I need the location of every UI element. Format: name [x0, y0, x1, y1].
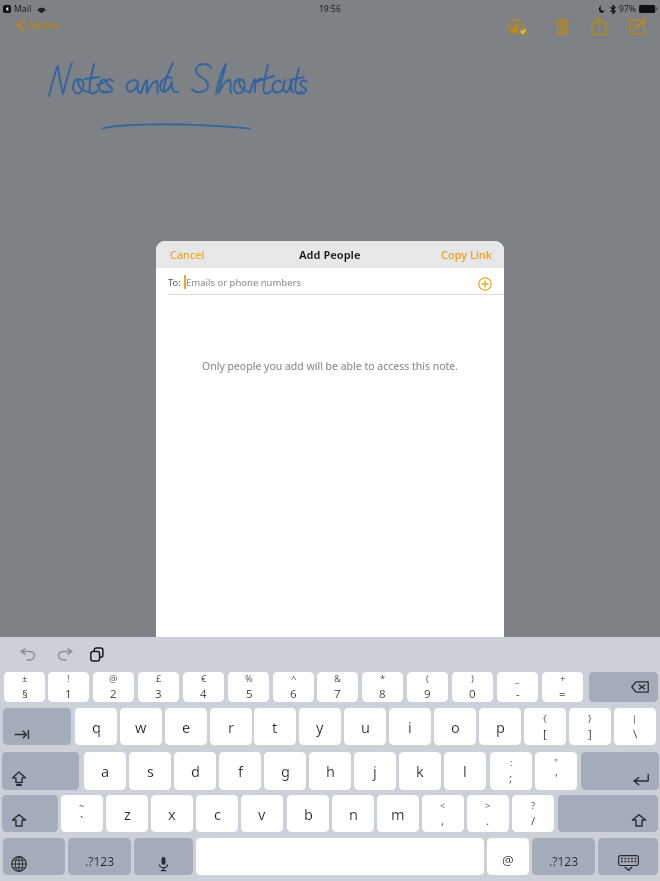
- button[interactable]: Copy Link: [429, 241, 504, 268]
- button[interactable]: c: [196, 795, 238, 832]
- button[interactable]: s: [129, 752, 171, 790]
- button[interactable]: q: [75, 708, 117, 745]
- button[interactable]: l: [444, 752, 486, 790]
- button[interactable]: n: [332, 795, 374, 832]
- button[interactable]: Delete: [547, 11, 577, 41]
- button[interactable]: *: [362, 672, 403, 702]
- button[interactable]: u: [344, 708, 386, 745]
- button[interactable]: .?123: [532, 838, 595, 875]
- staticText: 3: [155, 686, 162, 702]
- button[interactable]: Notes: [16, 16, 61, 34]
- button[interactable]: e: [165, 708, 207, 745]
- button[interactable]: }: [569, 708, 611, 745]
- staticText: t: [272, 717, 278, 737]
- button[interactable]: (: [407, 672, 448, 702]
- staticText: r: [228, 717, 234, 737]
- button[interactable]: Compose: [622, 11, 652, 41]
- staticText: a: [101, 761, 110, 781]
- button[interactable]: {: [524, 708, 566, 745]
- staticText: v: [258, 804, 266, 824]
- button[interactable]: €: [183, 672, 224, 702]
- staticText: 5: [246, 686, 253, 702]
- button[interactable]: o: [434, 708, 476, 745]
- button[interactable]: a: [84, 752, 126, 790]
- staticText: ?: [531, 799, 536, 812]
- staticText: m: [391, 804, 405, 824]
- button[interactable]: z: [106, 795, 148, 832]
- button[interactable]: g: [264, 752, 306, 790]
- button[interactable]: k: [399, 752, 441, 790]
- button[interactable]: Redo: [50, 641, 78, 667]
- staticText: -: [516, 686, 520, 702]
- staticText: 2: [110, 686, 117, 702]
- button[interactable]: +: [542, 672, 583, 702]
- button[interactable]: t: [254, 708, 296, 745]
- button[interactable]: h: [309, 752, 351, 790]
- staticText: Add People: [299, 247, 361, 262]
- button[interactable]: Add people: [503, 12, 533, 42]
- button[interactable]: Shift: [2, 795, 58, 832]
- staticText: x: [168, 804, 176, 824]
- staticText: f: [238, 761, 243, 781]
- button[interactable]: £: [138, 672, 179, 702]
- staticText: €: [201, 672, 207, 685]
- staticText: 4: [200, 686, 207, 702]
- button[interactable]: p: [479, 708, 521, 745]
- button[interactable]: .?123: [68, 838, 131, 875]
- staticText: u: [361, 717, 370, 737]
- button[interactable]: @: [487, 838, 529, 875]
- button[interactable]: Shift: [558, 795, 658, 832]
- button[interactable]: w: [120, 708, 162, 745]
- button[interactable]: |: [614, 708, 656, 745]
- button[interactable]: d: [174, 752, 216, 790]
- button[interactable]: Undo: [14, 641, 42, 667]
- staticText: 9: [424, 686, 431, 702]
- staticText: @: [502, 851, 514, 869]
- staticText: .: [486, 813, 490, 829]
- button[interactable]: Paste: [84, 641, 110, 667]
- button[interactable]: Cancel: [156, 241, 219, 268]
- button[interactable]: Change keyboard: [3, 838, 65, 875]
- button[interactable]: x: [151, 795, 193, 832]
- staticText: Only people you add will be able to acce…: [202, 359, 459, 373]
- button[interactable]: Hide keyboard: [598, 838, 658, 875]
- button[interactable]: !: [48, 672, 89, 702]
- button[interactable]: _: [497, 672, 538, 702]
- button[interactable]: ^: [273, 672, 314, 702]
- button[interactable]: Share: [584, 11, 614, 41]
- staticText: c: [214, 804, 221, 824]
- staticText: .?123: [549, 853, 579, 869]
- staticText: 0: [469, 686, 476, 702]
- button[interactable]: y: [299, 708, 341, 745]
- button[interactable]: Tab: [3, 708, 71, 745]
- button[interactable]: r: [210, 708, 252, 745]
- button[interactable]: f: [219, 752, 261, 790]
- button[interactable]: i: [389, 708, 431, 745]
- staticText: h: [326, 761, 335, 781]
- button[interactable]: j: [354, 752, 396, 790]
- staticText: +: [560, 672, 566, 685]
- button[interactable]: ": [535, 752, 577, 790]
- button[interactable]: Backspace: [589, 672, 658, 702]
- button[interactable]: <: [422, 795, 464, 832]
- button[interactable]: Caps Lock: [2, 752, 79, 790]
- button[interactable]: Return: [581, 752, 659, 790]
- button[interactable]: >: [467, 795, 509, 832]
- button[interactable]: %: [228, 672, 269, 702]
- button[interactable]: b: [287, 795, 329, 832]
- button[interactable]: Dictate: [134, 838, 193, 875]
- button[interactable]: v: [241, 795, 283, 832]
- button[interactable]: @: [93, 672, 134, 702]
- button[interactable]: &: [317, 672, 358, 702]
- staticText: b: [304, 804, 313, 824]
- button[interactable]: m: [377, 795, 419, 832]
- button[interactable]: ±: [4, 672, 45, 702]
- button[interactable]: :: [490, 752, 532, 790]
- button[interactable]: ): [452, 672, 493, 702]
- button[interactable]: Add contact: [478, 277, 492, 291]
- staticText: Notes: [29, 17, 61, 33]
- staticText: !: [67, 672, 70, 685]
- button[interactable]: ?: [512, 795, 554, 832]
- button[interactable]: ~: [61, 795, 103, 832]
